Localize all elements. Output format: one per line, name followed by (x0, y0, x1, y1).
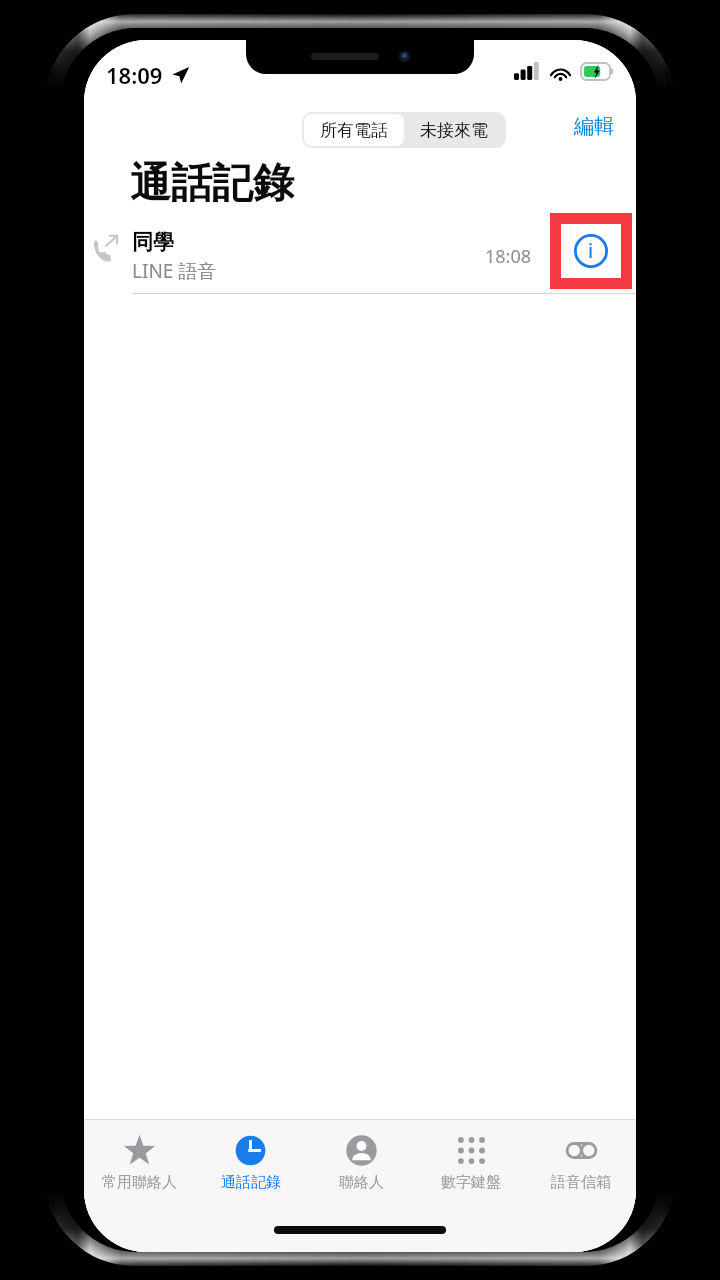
staticText: 聯絡人 (339, 1173, 384, 1192)
button[interactable]: 所有電話 (304, 114, 404, 146)
staticText: 編輯 (574, 114, 614, 139)
staticText: 同學 (132, 229, 174, 255)
staticText: 未接來電 (420, 120, 488, 141)
staticText: 數字鍵盤 (441, 1173, 501, 1192)
button[interactable]: 編輯 (570, 110, 618, 143)
staticText: LINE 語音 (132, 258, 217, 284)
button[interactable]: 語音信箱 (526, 1120, 636, 1192)
staticText: i (588, 238, 594, 264)
staticText: 語音信箱 (551, 1173, 611, 1192)
button[interactable]: 未接來電 (404, 114, 504, 146)
staticText: 通話記錄 (221, 1173, 281, 1192)
staticText: 18:09 (106, 60, 163, 90)
button[interactable]: 通話記錄 (195, 1120, 306, 1192)
staticText: 18:08 (485, 244, 532, 269)
staticText: 常用聯絡人 (102, 1173, 177, 1192)
button[interactable]: More info (569, 229, 613, 273)
button[interactable]: 數字鍵盤 (416, 1120, 526, 1192)
staticText: 所有電話 (320, 120, 388, 141)
button[interactable]: 同學 (84, 218, 636, 294)
button[interactable]: 常用聯絡人 (84, 1120, 195, 1192)
button[interactable]: 聯絡人 (306, 1120, 416, 1192)
staticText: 通話記錄 (130, 158, 294, 210)
